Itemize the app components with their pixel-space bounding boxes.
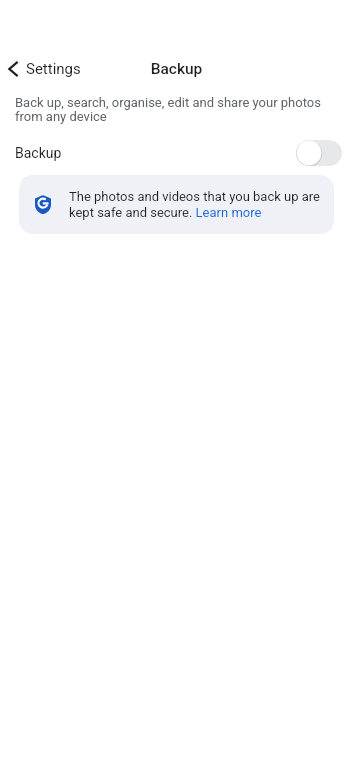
staticText: Backup (15, 145, 62, 161)
staticText: Back up, search, organise, edit and shar… (15, 95, 325, 124)
staticText: The photos and videos that you back up a… (69, 189, 320, 220)
button[interactable]: Back to Settings (4, 56, 85, 82)
button[interactable]: Backup (0, 135, 353, 171)
button[interactable]: The photos and videos that you back up a… (19, 175, 334, 234)
staticText: Backup (0, 60, 353, 78)
staticText: Settings (26, 60, 81, 78)
button[interactable]: Backup off (296, 140, 342, 166)
